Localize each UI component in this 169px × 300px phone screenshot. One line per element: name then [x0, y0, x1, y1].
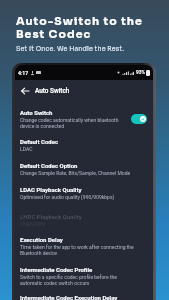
button[interactable]: Auto switch toggle [131, 114, 147, 124]
staticText: Auto-Switch to the Best Codec [16, 14, 143, 41]
staticText: Optimised for audio quality (990/909kbps… [20, 194, 115, 200]
staticText: Intermediate Codec Execution Delay [20, 294, 118, 300]
staticText: Execution Delay [20, 236, 63, 243]
button[interactable]: Intermediate Codec Execution Delay [20, 294, 147, 300]
button[interactable]: Default Codec Option [20, 162, 147, 176]
staticText: Default Codec [20, 138, 59, 145]
staticText: 93% [136, 70, 145, 76]
staticText: Intermediate Codec Profile [20, 266, 93, 273]
button[interactable]: Intermediate Codec Profile [20, 266, 147, 286]
staticText: Time taken for the app to work after con… [20, 244, 134, 256]
staticText: LDAC Playback Quality [20, 186, 82, 193]
button[interactable]: LDAC Playback Quality [20, 186, 147, 200]
staticText: Auto Switch [20, 109, 53, 116]
button[interactable]: Back [19, 85, 31, 97]
button[interactable]: Default Codec [20, 138, 147, 152]
staticText: Change codec automatically when bluetoot… [20, 117, 126, 129]
button[interactable]: Auto Switch [20, 109, 147, 129]
staticText: LHDC Playback Quality [20, 213, 82, 220]
staticText: Auto Switch [35, 87, 70, 95]
staticText: 4:17 [18, 70, 29, 76]
staticText: Change Sample Rate, Bits/Sample, Channel… [20, 170, 131, 176]
staticText: Switch to a specific codec profile befor… [20, 274, 134, 286]
button[interactable]: Execution Delay [20, 236, 147, 256]
staticText: Default Codec Option [20, 162, 78, 169]
staticText: LDAC [20, 146, 33, 152]
button[interactable]: LHDC Playback Quality [20, 213, 147, 227]
staticText: Set It Once. We Handle the Rest. [16, 45, 125, 53]
staticText: UNKNOWN [20, 221, 45, 227]
